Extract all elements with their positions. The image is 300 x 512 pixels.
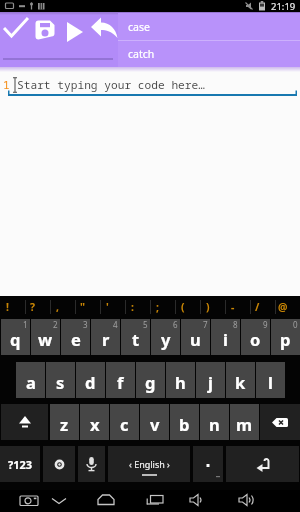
button[interactable]: s: [46, 362, 75, 398]
staticText: k: [235, 371, 246, 393]
button[interactable]: p: [271, 319, 300, 355]
staticText: (: [181, 300, 185, 314]
staticText: p: [280, 328, 291, 350]
button[interactable]: [3, 17, 30, 41]
staticText: ?: [30, 300, 36, 314]
staticText: 0: [293, 319, 298, 330]
staticText: d: [85, 371, 96, 393]
button[interactable]: a: [16, 362, 45, 398]
staticText: ‹ English ›: [129, 458, 170, 470]
staticText: ,: [56, 300, 59, 314]
staticText: !: [6, 300, 9, 314]
button[interactable]: [19, 494, 40, 506]
staticText: t: [132, 328, 140, 350]
button[interactable]: [193, 446, 223, 482]
button[interactable]: t: [121, 319, 150, 355]
staticText: @: [278, 300, 288, 314]
button[interactable]: [51, 497, 67, 505]
button[interactable]: ?: [20, 296, 45, 318]
button[interactable]: e: [61, 319, 90, 355]
button[interactable]: [260, 404, 300, 440]
button[interactable]: l: [256, 362, 285, 398]
button[interactable]: o: [241, 319, 270, 355]
staticText: y: [161, 328, 171, 350]
button[interactable]: [78, 446, 105, 482]
button[interactable]: i: [211, 319, 240, 355]
button[interactable]: [43, 446, 75, 482]
button[interactable]: r: [91, 319, 120, 355]
button[interactable]: [91, 17, 118, 39]
staticText: g: [145, 371, 156, 393]
staticText: ': [106, 300, 109, 314]
button[interactable]: (: [170, 296, 195, 318]
staticText: 5: [143, 319, 148, 330]
staticText: 3: [83, 319, 88, 330]
button[interactable]: [35, 20, 55, 40]
button[interactable]: d: [76, 362, 105, 398]
staticText: j: [208, 371, 213, 393]
button[interactable]: j: [196, 362, 225, 398]
button[interactable]: m: [230, 404, 259, 440]
button[interactable]: case: [118, 13, 300, 40]
staticText: m: [236, 413, 253, 435]
staticText: ?123: [8, 457, 33, 472]
staticText: a: [26, 371, 36, 393]
staticText: case: [128, 20, 150, 34]
button[interactable]: /: [245, 296, 270, 318]
staticText: 8: [233, 319, 238, 330]
staticText: Start typing your code here…: [17, 77, 205, 92]
button[interactable]: [145, 494, 165, 506]
staticText: r: [102, 328, 110, 350]
staticText: 7: [203, 319, 208, 330]
button[interactable]: c: [110, 404, 139, 440]
button[interactable]: ,: [45, 296, 70, 318]
button[interactable]: b: [170, 404, 199, 440]
button[interactable]: ': [95, 296, 120, 318]
button[interactable]: v: [140, 404, 169, 440]
button[interactable]: w: [31, 319, 60, 355]
staticText: 1: [3, 77, 10, 92]
button[interactable]: n: [200, 404, 229, 440]
staticText: catch: [128, 47, 155, 61]
button[interactable]: @: [270, 296, 295, 318]
staticText: u: [190, 328, 201, 350]
staticText: s: [56, 371, 65, 393]
button[interactable]: ): [195, 296, 220, 318]
button[interactable]: [189, 494, 206, 506]
button[interactable]: u: [181, 319, 210, 355]
button[interactable]: [238, 494, 257, 506]
staticText: ): [206, 300, 210, 314]
staticText: 1: [23, 319, 28, 330]
staticText: h: [175, 371, 186, 393]
button[interactable]: y: [151, 319, 180, 355]
button[interactable]: f: [106, 362, 135, 398]
staticText: x: [90, 413, 100, 435]
button[interactable]: z: [50, 404, 79, 440]
button[interactable]: q: [1, 319, 30, 355]
button[interactable]: [66, 22, 84, 42]
staticText: i: [223, 328, 228, 350]
button[interactable]: ‹ English ›: [108, 446, 190, 482]
staticText: ;: [156, 300, 159, 314]
button[interactable]: !: [0, 296, 20, 318]
button[interactable]: g: [136, 362, 165, 398]
staticText: -: [231, 300, 235, 314]
button[interactable]: catch: [118, 41, 300, 67]
staticText: e: [71, 328, 81, 350]
button[interactable]: :: [120, 296, 145, 318]
button[interactable]: h: [166, 362, 195, 398]
button[interactable]: [97, 494, 115, 506]
staticText: :: [131, 300, 134, 314]
staticText: /: [255, 300, 260, 314]
button[interactable]: [226, 446, 299, 482]
button[interactable]: ": [70, 296, 95, 318]
staticText: v: [150, 413, 160, 435]
staticText: ": [80, 300, 86, 314]
button[interactable]: ?123: [0, 446, 40, 482]
button[interactable]: -: [220, 296, 245, 318]
button[interactable]: x: [80, 404, 109, 440]
button[interactable]: [1, 404, 48, 440]
button[interactable]: ;: [145, 296, 170, 318]
button[interactable]: k: [226, 362, 255, 398]
staticText: n: [209, 413, 220, 435]
